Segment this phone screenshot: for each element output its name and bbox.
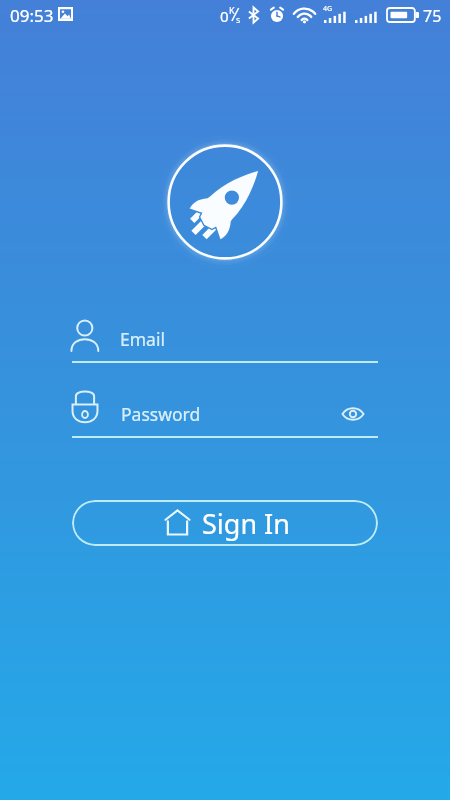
staticText: 4G <box>323 4 333 14</box>
staticText: 0 <box>220 6 229 26</box>
staticText: 75 <box>423 5 442 27</box>
button[interactable]: Sign In <box>72 500 378 546</box>
staticText: Email <box>120 327 165 351</box>
staticText: Sign In <box>202 505 290 542</box>
staticText: Password <box>121 402 201 426</box>
button[interactable]: Email <box>72 316 378 364</box>
staticText: 09:53 <box>10 4 54 27</box>
button[interactable]: Show password <box>338 399 368 429</box>
staticText: s <box>236 13 241 25</box>
staticText: K <box>229 4 235 16</box>
